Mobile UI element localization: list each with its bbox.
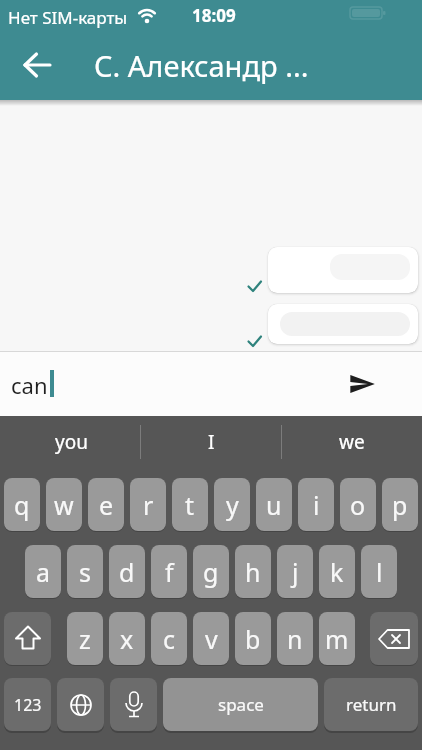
staticText: С. Александр ...	[94, 46, 309, 85]
button[interactable]: space	[163, 678, 318, 731]
button[interactable]: I	[164, 429, 258, 455]
button[interactable]	[110, 678, 157, 731]
button[interactable]: t	[172, 478, 208, 531]
staticText: s	[79, 555, 91, 589]
staticText: n	[287, 622, 303, 656]
button[interactable]: b	[235, 612, 271, 665]
button[interactable]: a	[25, 545, 61, 598]
staticText: x	[120, 622, 134, 656]
staticText: b	[245, 622, 261, 656]
button[interactable]: m	[319, 612, 355, 665]
staticText: q	[14, 488, 30, 522]
button[interactable]: r	[130, 478, 166, 531]
staticText: l	[376, 555, 383, 589]
button[interactable]: j	[277, 545, 313, 598]
staticText: w	[54, 488, 74, 522]
button[interactable]: u	[256, 478, 292, 531]
button[interactable]: z	[67, 612, 103, 665]
button[interactable]: p	[382, 478, 418, 531]
staticText: t	[185, 488, 195, 522]
staticText: j	[292, 555, 299, 589]
button[interactable]: y	[214, 478, 250, 531]
staticText: can	[11, 370, 48, 400]
button[interactable]: e	[88, 478, 124, 531]
button[interactable]: k	[319, 545, 355, 598]
button[interactable]: l	[361, 545, 397, 598]
staticText: v	[205, 622, 218, 656]
staticText: f	[165, 555, 174, 589]
staticText: you	[55, 429, 88, 455]
button[interactable]	[4, 612, 51, 665]
button[interactable]: we	[305, 429, 399, 455]
button[interactable]: i	[298, 478, 334, 531]
button[interactable]: n	[277, 612, 313, 665]
button[interactable]	[16, 50, 60, 82]
button[interactable]: h	[235, 545, 271, 598]
staticText: o	[350, 488, 366, 522]
staticText: e	[99, 488, 114, 522]
staticText: 123	[14, 694, 42, 716]
staticText: m	[325, 622, 349, 656]
button[interactable]: q	[4, 478, 40, 531]
staticText: d	[119, 555, 135, 589]
button[interactable]: you	[24, 429, 118, 455]
staticText: p	[392, 488, 408, 522]
staticText: r	[143, 488, 154, 522]
button[interactable]: s	[67, 545, 103, 598]
button[interactable]	[370, 612, 418, 665]
button[interactable]: v	[193, 612, 229, 665]
button[interactable]: return	[324, 678, 418, 731]
staticText: we	[339, 429, 365, 455]
button[interactable]: f	[151, 545, 187, 598]
staticText: space	[218, 693, 264, 716]
staticText: i	[313, 488, 320, 522]
staticText: return	[346, 693, 397, 716]
button[interactable]: c	[151, 612, 187, 665]
staticText: Нет SIM-карты	[8, 6, 128, 29]
button[interactable]: d	[109, 545, 145, 598]
staticText: z	[79, 622, 91, 656]
staticText: y	[226, 488, 239, 522]
button[interactable]	[57, 678, 104, 731]
staticText: a	[36, 555, 51, 589]
button[interactable]: o	[340, 478, 376, 531]
button[interactable]: w	[46, 478, 82, 531]
staticText: I	[208, 429, 215, 455]
button[interactable]	[268, 247, 418, 293]
staticText: g	[203, 555, 219, 589]
staticText: k	[330, 555, 344, 589]
button[interactable]: 123	[4, 678, 51, 731]
staticText: h	[245, 555, 261, 589]
button[interactable]	[336, 360, 388, 408]
button[interactable]	[268, 304, 418, 344]
button[interactable]: x	[109, 612, 145, 665]
staticText: c	[163, 622, 176, 656]
staticText: u	[266, 488, 282, 522]
button[interactable]: g	[193, 545, 229, 598]
staticText: 18:09	[192, 4, 236, 27]
